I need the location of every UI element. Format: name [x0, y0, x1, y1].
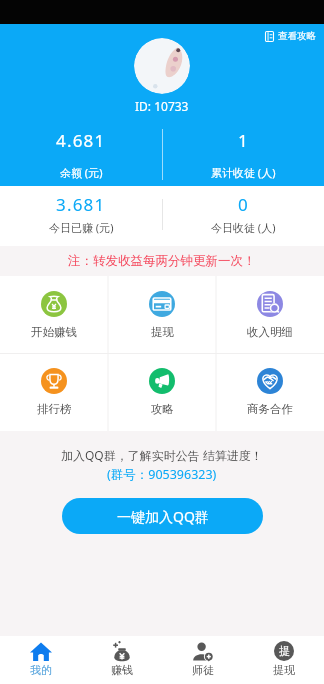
staticText: 我的	[30, 663, 52, 677]
staticText: 累计收徒 (人)	[211, 165, 276, 180]
staticText: 余额 (元)	[60, 165, 103, 180]
staticText: 赚钱	[111, 663, 133, 677]
button[interactable]: 收入明细	[216, 276, 324, 353]
staticText: 注：转发收益每两分钟更新一次！	[68, 253, 256, 269]
staticText: 攻略	[151, 402, 174, 416]
staticText: 0	[238, 193, 249, 216]
staticText: 师徒	[192, 663, 214, 677]
staticText: 排行榜	[37, 402, 72, 416]
button[interactable]: 3.681	[0, 186, 162, 246]
staticText: 1	[238, 129, 249, 152]
staticText: 开始赚钱	[31, 325, 77, 339]
staticText: 查看攻略	[278, 30, 316, 42]
button[interactable]: 开始赚钱	[0, 276, 108, 353]
button[interactable]: 商务合作	[216, 353, 324, 431]
staticText: 今日已赚 (元)	[49, 220, 114, 235]
button[interactable]: 查看攻略	[263, 27, 318, 45]
staticText: 今日收徒 (人)	[211, 220, 276, 235]
staticText: 提现	[151, 325, 174, 339]
staticText: 提	[279, 644, 290, 658]
staticText: 4.681	[56, 129, 106, 152]
button[interactable]: Avatar	[134, 38, 190, 94]
staticText: ID: 10733	[135, 98, 189, 114]
button[interactable]: 0	[162, 186, 324, 246]
button[interactable]: 4.681	[0, 120, 162, 186]
button[interactable]: 攻略	[108, 353, 216, 431]
button[interactable]: 赚钱	[81, 636, 162, 684]
button[interactable]: 师徒	[162, 636, 243, 684]
staticText: (群号：905396323)	[107, 466, 217, 483]
staticText: 3.681	[56, 193, 106, 216]
button[interactable]: 排行榜	[0, 353, 108, 431]
button[interactable]: 1	[162, 120, 324, 186]
staticText: 提现	[273, 663, 295, 677]
button[interactable]: 提	[243, 636, 324, 684]
button[interactable]: 我的	[0, 636, 81, 684]
staticText: 收入明细	[247, 325, 293, 339]
staticText: 一键加入QQ群	[117, 507, 209, 526]
staticText: 商务合作	[247, 402, 293, 416]
button[interactable]: 提现	[108, 276, 216, 353]
staticText: 加入QQ群，了解实时公告 结算进度！	[61, 447, 263, 463]
button[interactable]: 一键加入QQ群	[62, 498, 263, 534]
